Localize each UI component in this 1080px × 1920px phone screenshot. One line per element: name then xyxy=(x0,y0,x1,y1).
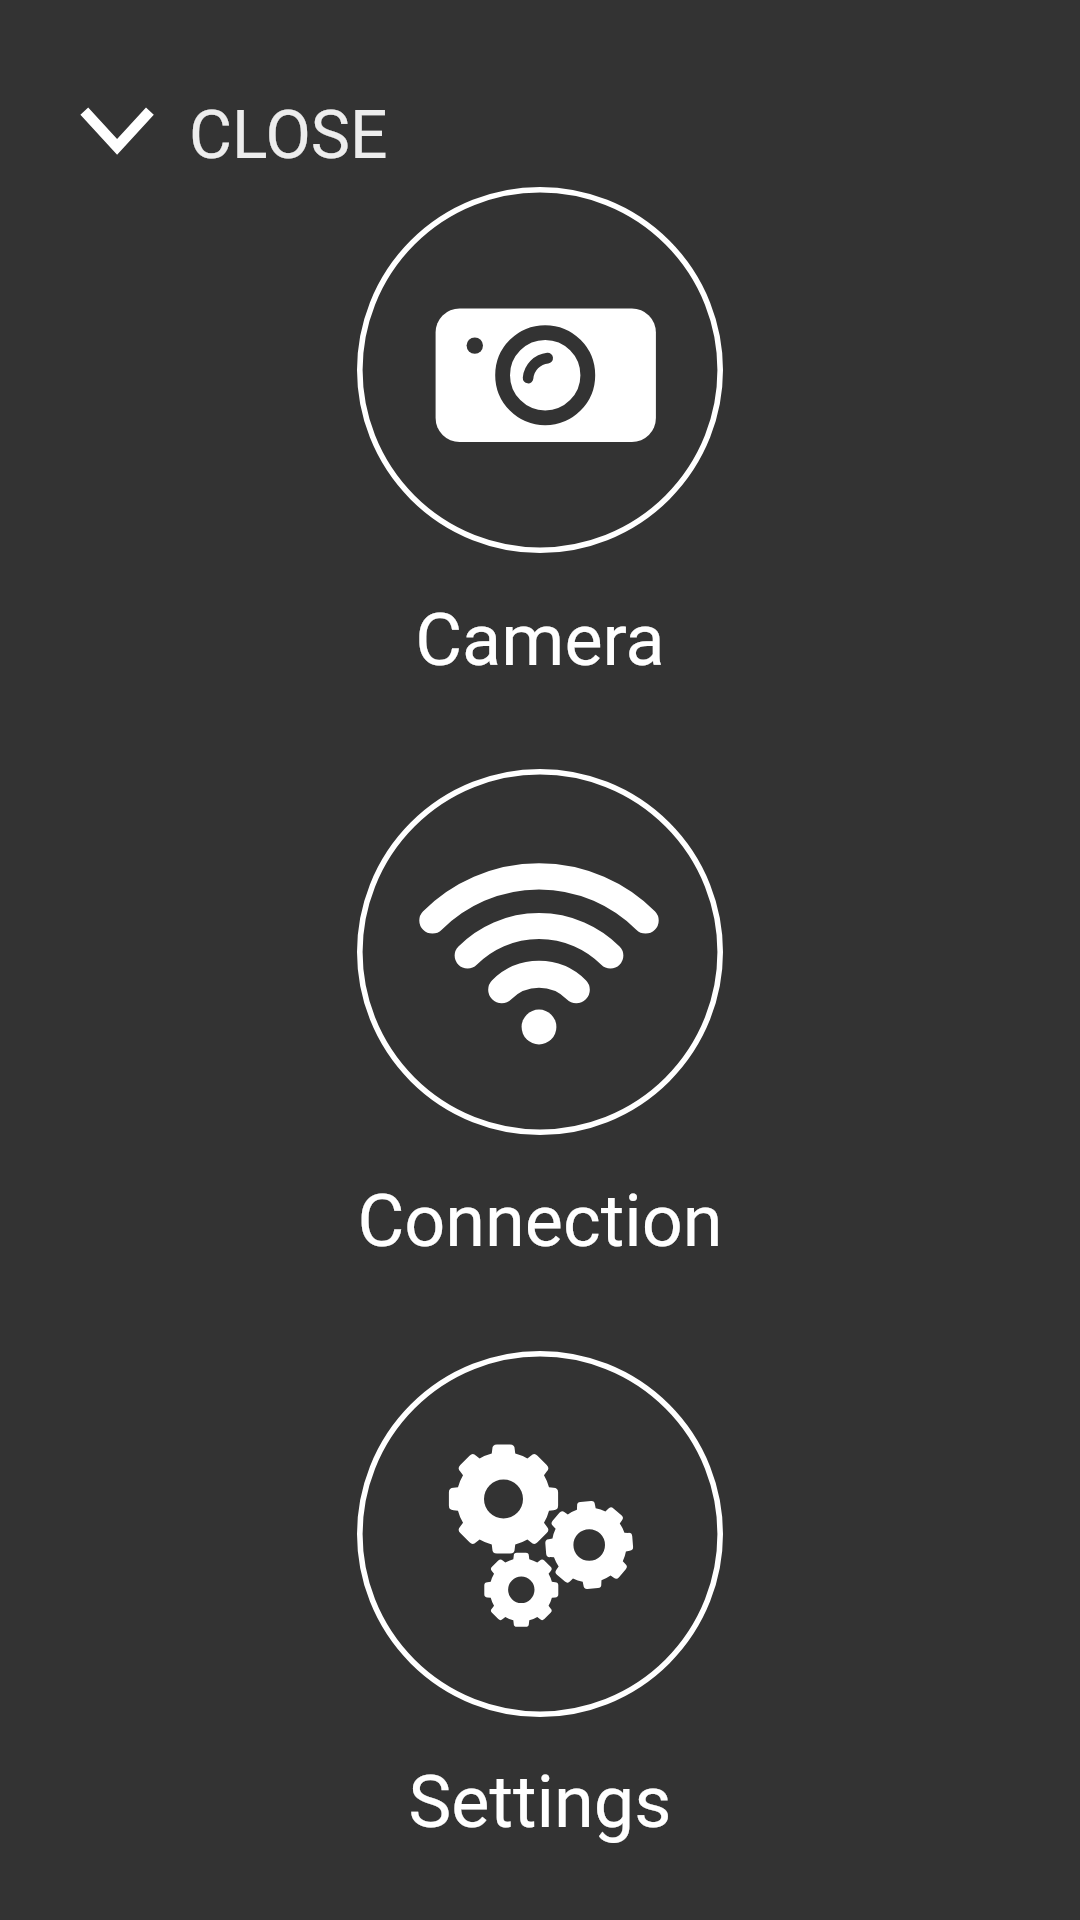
button[interactable]: Close xyxy=(52,66,424,196)
button[interactable]: Camera xyxy=(250,187,830,699)
staticText: Settings xyxy=(250,1760,830,1844)
other: Camera xyxy=(357,187,723,553)
staticText: CLOSE xyxy=(189,97,388,174)
other: Settings xyxy=(357,1351,723,1717)
other: Connection xyxy=(357,769,723,1135)
button[interactable]: Connection xyxy=(250,769,830,1280)
staticText: Camera xyxy=(250,598,830,682)
button[interactable]: Settings xyxy=(250,1351,830,1862)
staticText: Connection xyxy=(250,1179,830,1263)
